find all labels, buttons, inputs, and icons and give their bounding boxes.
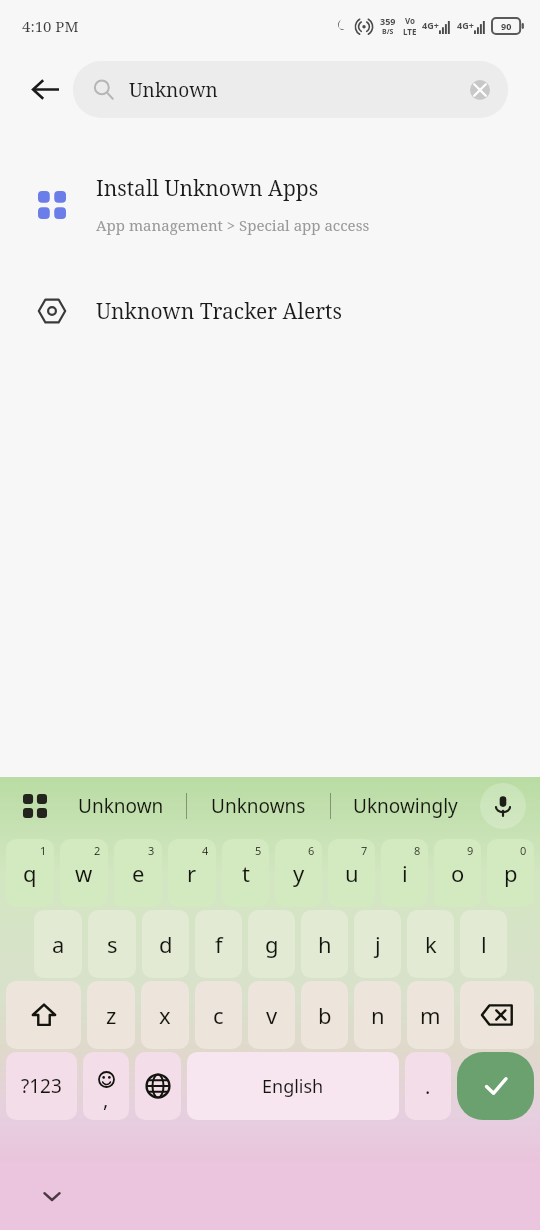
button[interactable]: l: [460, 910, 507, 978]
button[interactable]: Voice input: [480, 783, 526, 829]
button[interactable]: Unknown: [73, 61, 508, 118]
staticText: c: [213, 1000, 224, 1030]
staticText: 8: [414, 843, 421, 858]
other: Change language: [145, 1073, 171, 1099]
button[interactable]: u: [328, 839, 375, 907]
staticText: 5: [255, 843, 262, 858]
button[interactable]: a: [34, 910, 82, 978]
staticText: r: [187, 858, 197, 888]
button[interactable]: ?123: [6, 1052, 77, 1120]
button[interactable]: Unknown: [56, 777, 186, 835]
staticText: k: [425, 929, 437, 959]
staticText: d: [159, 929, 173, 959]
button[interactable]: r: [168, 839, 216, 907]
button[interactable]: x: [141, 981, 189, 1049]
other: Shift: [31, 1002, 57, 1028]
staticText: ,: [103, 1086, 109, 1113]
staticText: App management > Special app access: [96, 215, 370, 235]
staticText: b: [318, 1000, 332, 1030]
staticText: .: [425, 1073, 431, 1100]
staticText: a: [52, 929, 65, 959]
other: Backspace: [481, 1003, 513, 1027]
staticText: Unknown: [129, 77, 460, 103]
staticText: j: [375, 929, 381, 959]
button[interactable]: Backspace: [460, 981, 534, 1049]
button[interactable]: w: [60, 839, 108, 907]
staticText: h: [318, 929, 332, 959]
button[interactable]: c: [195, 981, 242, 1049]
staticText: 4:10 PM: [22, 16, 79, 36]
staticText: u: [345, 858, 359, 888]
button[interactable]: English: [187, 1052, 399, 1120]
staticText: i: [402, 858, 408, 888]
staticText: 1: [40, 843, 47, 858]
button[interactable]: k: [407, 910, 454, 978]
button[interactable]: o: [434, 839, 481, 907]
staticText: 4: [202, 843, 209, 858]
staticText: m: [420, 1000, 441, 1030]
staticText: g: [265, 929, 279, 959]
button[interactable]: Clear: [460, 70, 500, 110]
staticText: B/S: [382, 27, 394, 37]
button[interactable]: Unknown Tracker Alerts: [0, 281, 540, 341]
button[interactable]: Toolbar: [14, 785, 56, 827]
button[interactable]: Uknowingly: [331, 777, 480, 835]
staticText: 90: [501, 20, 512, 32]
staticText: x: [159, 1000, 171, 1030]
staticText: t: [242, 858, 250, 888]
button[interactable]: Hide keyboard: [30, 1174, 74, 1218]
button[interactable]: Install Unknown Apps: [0, 174, 540, 235]
button[interactable]: Unknowns: [187, 777, 330, 835]
button[interactable]: h: [301, 910, 348, 978]
staticText: 0: [520, 843, 527, 858]
staticText: v: [266, 1000, 278, 1030]
staticText: LTE: [403, 26, 417, 37]
button[interactable]: z: [87, 981, 135, 1049]
staticText: 4G+: [457, 19, 474, 31]
button[interactable]: t: [222, 839, 269, 907]
staticText: Vo: [405, 15, 416, 26]
button[interactable]: j: [354, 910, 401, 978]
staticText: e: [132, 858, 145, 888]
button[interactable]: .: [405, 1052, 451, 1120]
staticText: s: [107, 929, 118, 959]
button[interactable]: s: [88, 910, 136, 978]
staticText: English: [262, 1074, 324, 1099]
staticText: z: [106, 1000, 117, 1030]
button[interactable]: f: [195, 910, 242, 978]
staticText: Unknowns: [211, 793, 306, 819]
staticText: 6: [308, 843, 315, 858]
button[interactable]: Change language: [135, 1052, 181, 1120]
button[interactable]: m: [407, 981, 454, 1049]
staticText: Install Unknown Apps: [96, 174, 319, 203]
button[interactable]: b: [301, 981, 348, 1049]
button[interactable]: n: [354, 981, 401, 1049]
staticText: y: [293, 858, 305, 888]
staticText: 9: [467, 843, 474, 858]
button[interactable]: Back: [22, 66, 68, 112]
button[interactable]: v: [248, 981, 295, 1049]
staticText: 7: [361, 843, 368, 858]
button[interactable]: p: [487, 839, 534, 907]
staticText: l: [481, 929, 487, 959]
staticText: n: [371, 1000, 385, 1030]
staticText: w: [75, 858, 93, 888]
button[interactable]: g: [248, 910, 295, 978]
staticText: q: [23, 858, 37, 888]
button[interactable]: d: [142, 910, 189, 978]
button[interactable]: ,: [83, 1052, 129, 1120]
staticText: 4G+: [422, 19, 439, 31]
button[interactable]: Enter: [457, 1052, 534, 1120]
staticText: ?123: [21, 1073, 62, 1099]
button[interactable]: y: [275, 839, 322, 907]
button[interactable]: Shift: [6, 981, 81, 1049]
button[interactable]: q: [6, 839, 54, 907]
staticText: f: [215, 929, 223, 959]
button[interactable]: i: [381, 839, 428, 907]
staticText: p: [504, 858, 518, 888]
staticText: Unknown Tracker Alerts: [96, 297, 342, 326]
staticText: 2: [94, 843, 101, 858]
button[interactable]: e: [114, 839, 162, 907]
staticText: o: [451, 858, 465, 888]
staticText: Unknown: [78, 793, 164, 819]
